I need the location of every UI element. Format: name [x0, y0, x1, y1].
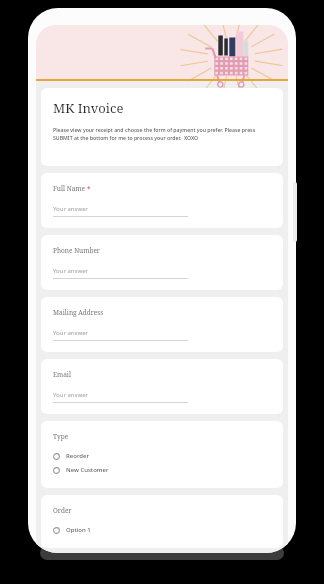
button[interactable]: Type [41, 421, 283, 488]
staticText: Your answer [53, 267, 88, 275]
staticText: Type [53, 432, 69, 441]
button[interactable]: Order [41, 495, 283, 548]
staticText: Order [53, 506, 72, 515]
staticText: Full Name [53, 184, 85, 193]
button[interactable]: Mailing Address [41, 297, 283, 352]
button[interactable]: New Customer [53, 463, 271, 477]
staticText: New Customer [66, 466, 109, 474]
staticText: Mailing Address [53, 308, 104, 317]
staticText: Your answer [53, 391, 88, 399]
button[interactable]: Phone Number [41, 235, 283, 290]
staticText: Please view your receipt and choose the … [53, 126, 271, 142]
staticText: Email [53, 370, 71, 379]
button[interactable]: MK Invoice [41, 88, 283, 166]
button[interactable]: Email [41, 359, 283, 414]
staticText: Phone Number [53, 246, 100, 255]
button[interactable]: Reorder [53, 449, 271, 463]
staticText: Your answer [53, 329, 88, 337]
staticText: * [87, 184, 91, 193]
button[interactable]: Option 1 [53, 523, 271, 537]
staticText: MK Invoice [53, 99, 124, 117]
staticText: Your answer [53, 205, 88, 213]
staticText: Reorder [66, 452, 90, 460]
button[interactable]: Full Name [41, 173, 283, 228]
staticText: Option 1 [66, 526, 91, 534]
other: Power button [293, 182, 297, 242]
